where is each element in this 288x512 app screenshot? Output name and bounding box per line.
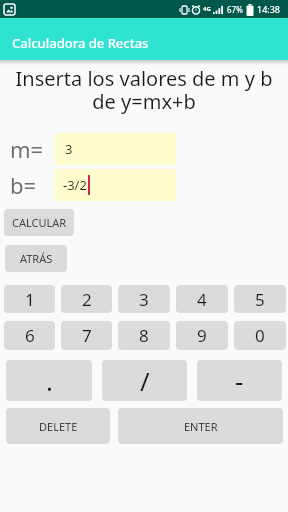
button[interactable]: .	[6, 360, 92, 401]
staticText: DELETE	[39, 419, 78, 434]
button[interactable]: 3	[118, 285, 170, 313]
staticText: 4	[197, 288, 207, 311]
button[interactable]: ENTER	[118, 408, 283, 444]
button[interactable]: 6	[4, 321, 55, 350]
staticText: m=	[10, 134, 44, 164]
staticText: 14:38	[257, 3, 281, 15]
staticText: -	[235, 363, 244, 398]
staticText: 8	[139, 324, 149, 347]
button[interactable]: 0	[234, 321, 286, 350]
button[interactable]: -3/2	[55, 169, 176, 201]
staticText: -3/2	[63, 176, 87, 194]
button[interactable]: CALCULAR	[4, 209, 74, 236]
staticText: 6	[25, 324, 35, 347]
button[interactable]: 2	[61, 285, 112, 313]
button[interactable]: DELETE	[6, 408, 110, 444]
staticText: ENTER	[184, 419, 218, 434]
staticText: 7	[82, 324, 92, 347]
button[interactable]: 5	[234, 285, 286, 313]
button[interactable]: 7	[61, 321, 112, 350]
button[interactable]: 9	[176, 321, 228, 350]
staticText: 4G	[203, 5, 211, 13]
staticText: Calculadora de Rectas	[12, 34, 149, 52]
button[interactable]: ATRÁS	[5, 245, 67, 272]
staticText: 5	[255, 288, 265, 311]
staticText: b=	[10, 170, 37, 200]
staticText: 0	[255, 324, 265, 347]
staticText: CALCULAR	[12, 215, 67, 230]
staticText: 3	[65, 140, 73, 158]
staticText: 67%	[227, 4, 243, 15]
staticText: 2	[82, 288, 92, 311]
staticText: 1	[25, 288, 35, 311]
staticText: ATRÁS	[20, 251, 53, 266]
staticText: Inserta los valores de m y b de y=mx+b	[0, 65, 288, 115]
button[interactable]: 3	[55, 133, 176, 165]
button[interactable]: /	[102, 360, 187, 401]
staticText: .	[46, 363, 53, 398]
staticText: 9	[197, 324, 207, 347]
button[interactable]: 4	[176, 285, 228, 313]
button[interactable]: 1	[4, 285, 55, 313]
staticText: /	[140, 363, 150, 398]
staticText: 3	[139, 288, 149, 311]
button[interactable]: -	[197, 360, 282, 401]
button[interactable]: 8	[118, 321, 170, 350]
